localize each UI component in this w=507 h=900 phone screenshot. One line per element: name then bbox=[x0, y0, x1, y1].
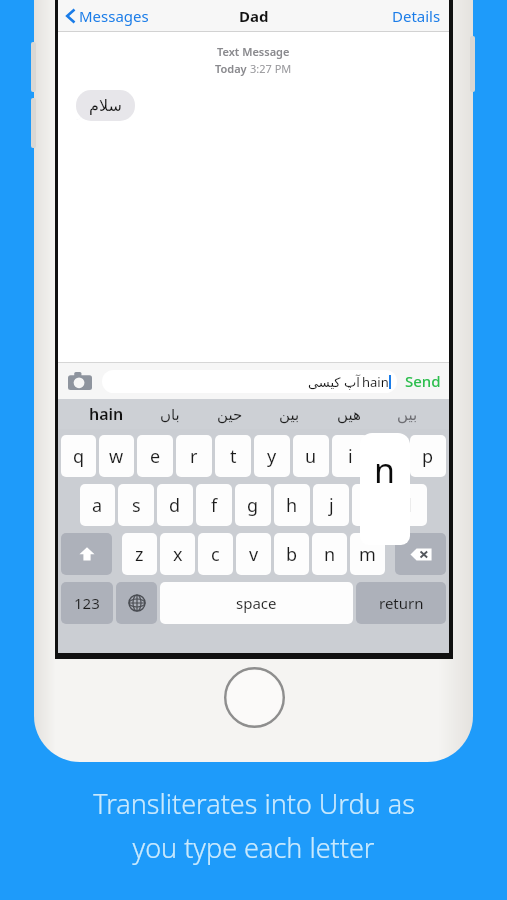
button[interactable]: Send bbox=[397, 371, 449, 391]
staticText: Today bbox=[215, 61, 250, 76]
staticText: باں bbox=[160, 406, 180, 423]
staticText: w bbox=[109, 444, 124, 469]
button[interactable]: g bbox=[235, 484, 271, 526]
staticText: o bbox=[384, 444, 395, 469]
button[interactable]: y bbox=[254, 435, 290, 477]
button[interactable]: p bbox=[410, 435, 446, 477]
button[interactable]: i bbox=[332, 435, 368, 477]
staticText: Dad bbox=[239, 6, 269, 26]
staticText: f bbox=[211, 493, 218, 518]
button[interactable]: s bbox=[118, 484, 154, 526]
staticText: Messages bbox=[79, 6, 149, 26]
staticText: a bbox=[92, 493, 103, 518]
staticText: Send bbox=[405, 371, 441, 391]
button[interactable]: hain bbox=[83, 400, 130, 428]
button[interactable]: باں bbox=[154, 403, 186, 426]
button[interactable]: h bbox=[274, 484, 310, 526]
staticText: s bbox=[132, 493, 141, 518]
button[interactable]: حین bbox=[211, 403, 249, 426]
staticText: space bbox=[236, 593, 277, 613]
staticText: 3:27 PM bbox=[250, 61, 292, 76]
button[interactable]: r bbox=[176, 435, 212, 477]
button[interactable]: f bbox=[196, 484, 232, 526]
button[interactable]: Delete bbox=[395, 533, 446, 575]
button[interactable]: Messages bbox=[58, 2, 155, 30]
button[interactable]: j bbox=[313, 484, 349, 526]
button[interactable]: آپ کیسی bbox=[102, 370, 397, 393]
staticText: m bbox=[359, 542, 376, 567]
button[interactable]: k bbox=[352, 484, 388, 526]
button[interactable]: e bbox=[137, 435, 173, 477]
button[interactable]: b bbox=[274, 533, 309, 575]
button[interactable]: v bbox=[236, 533, 271, 575]
staticText: d bbox=[169, 493, 181, 518]
button[interactable]: return bbox=[356, 582, 446, 624]
button[interactable]: z bbox=[122, 533, 157, 575]
button[interactable]: d bbox=[157, 484, 193, 526]
button[interactable]: c bbox=[198, 533, 233, 575]
button[interactable]: Change keyboard language bbox=[116, 582, 157, 624]
staticText: u bbox=[305, 444, 317, 469]
button[interactable]: q bbox=[61, 435, 96, 477]
button[interactable]: سلام bbox=[76, 90, 135, 121]
button[interactable]: o bbox=[371, 435, 407, 477]
button[interactable]: x bbox=[160, 533, 195, 575]
button[interactable]: u bbox=[293, 435, 329, 477]
staticText: بین bbox=[279, 406, 300, 423]
staticText: return bbox=[379, 593, 424, 613]
button[interactable]: Shift bbox=[61, 533, 112, 575]
staticText: l bbox=[407, 493, 412, 518]
staticText: you type each letter bbox=[132, 829, 375, 866]
button[interactable]: 123 bbox=[61, 582, 113, 624]
staticText: v bbox=[249, 542, 259, 567]
staticText: Transliterates into Urdu as bbox=[93, 785, 415, 822]
staticText: h bbox=[286, 493, 298, 518]
staticText: t bbox=[230, 444, 237, 469]
staticText: r bbox=[190, 444, 198, 469]
staticText: q bbox=[73, 444, 85, 469]
staticText: j bbox=[329, 493, 334, 518]
staticText: سلام bbox=[89, 96, 122, 115]
button[interactable]: t bbox=[215, 435, 251, 477]
button[interactable]: بین bbox=[273, 403, 306, 426]
button[interactable]: Details bbox=[384, 2, 449, 30]
staticText: g bbox=[247, 493, 259, 518]
button[interactable]: w bbox=[99, 435, 134, 477]
button[interactable]: Take photo bbox=[58, 372, 102, 390]
button[interactable]: n bbox=[312, 533, 347, 575]
staticText: آپ کیسی bbox=[308, 373, 360, 391]
staticText: b bbox=[286, 542, 298, 567]
staticText: y bbox=[267, 444, 277, 469]
staticText: n bbox=[324, 542, 336, 567]
staticText: بیں bbox=[397, 406, 418, 423]
staticText: c bbox=[211, 542, 220, 567]
button[interactable]: ھیں bbox=[331, 403, 367, 426]
staticText: hain bbox=[89, 403, 124, 425]
staticText: n bbox=[374, 447, 396, 493]
button[interactable]: a bbox=[80, 484, 115, 526]
staticText: z bbox=[135, 542, 144, 567]
staticText: 123 bbox=[74, 593, 100, 613]
button[interactable]: m bbox=[350, 533, 385, 575]
button[interactable]: بیں bbox=[391, 403, 424, 426]
staticText: حین bbox=[217, 406, 243, 423]
staticText: hain bbox=[362, 373, 389, 391]
staticText: p bbox=[422, 444, 434, 469]
button[interactable]: l bbox=[391, 484, 427, 526]
staticText: ھیں bbox=[337, 406, 361, 423]
staticText: x bbox=[173, 542, 183, 567]
button[interactable]: space bbox=[160, 582, 353, 624]
staticText: i bbox=[348, 444, 353, 469]
staticText: e bbox=[150, 444, 161, 469]
staticText: Text Message bbox=[217, 44, 290, 59]
button[interactable]: n bbox=[360, 433, 410, 545]
